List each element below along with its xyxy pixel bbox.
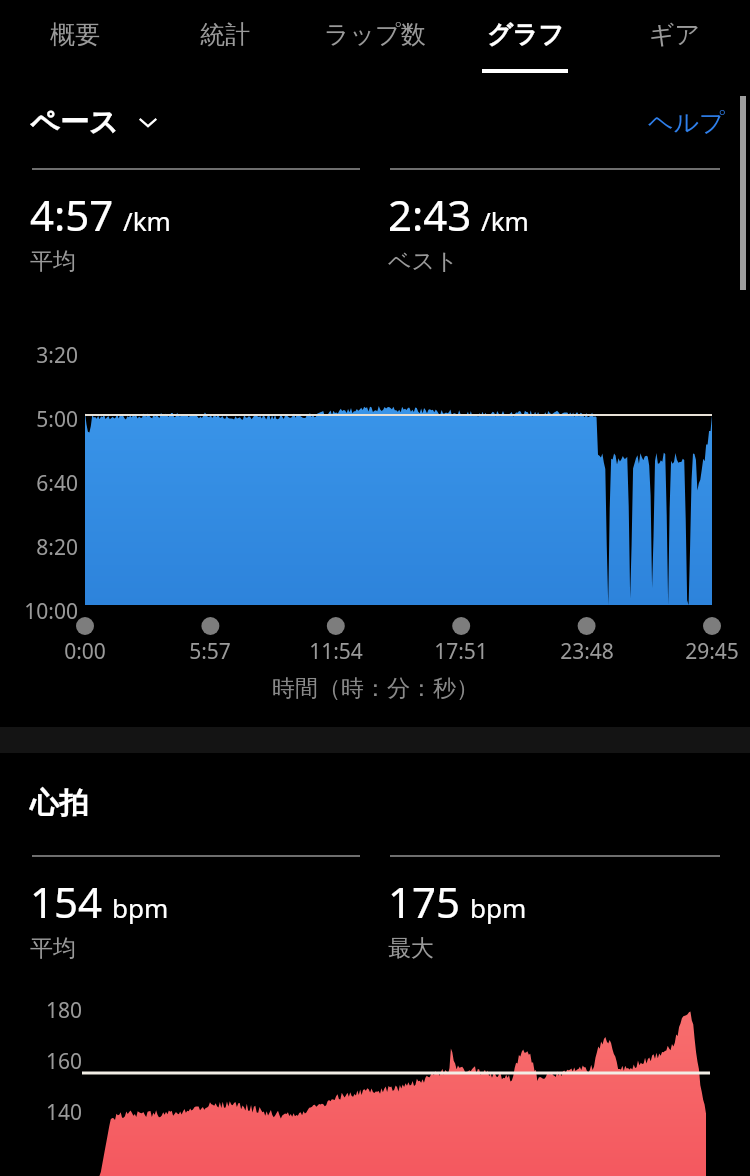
staticText: 17:51 — [434, 637, 488, 666]
staticText: 心拍 — [30, 785, 88, 822]
staticText: 最大 — [388, 934, 434, 963]
staticText: ベスト — [388, 247, 459, 276]
staticText: 4:57 — [30, 186, 114, 243]
button[interactable]: 154 — [30, 873, 370, 963]
staticText: 5:00 — [36, 405, 78, 434]
staticText: 23:48 — [560, 637, 614, 666]
staticText: 29:45 — [685, 637, 739, 666]
staticText: 10:00 — [24, 597, 78, 626]
staticText: /km — [123, 203, 171, 238]
staticText: bpm — [470, 890, 527, 925]
staticText: 5:57 — [189, 637, 231, 666]
button[interactable]: 2:43 — [388, 186, 728, 276]
staticText: 3:20 — [36, 341, 78, 370]
button[interactable]: ペース — [30, 100, 161, 144]
staticText: 2:43 — [388, 186, 472, 243]
staticText: ラップ数 — [324, 19, 426, 50]
button[interactable]: 統計 — [150, 0, 300, 92]
button[interactable]: ギア — [600, 0, 750, 92]
staticText: 140 — [45, 1098, 82, 1127]
staticText: 平均 — [30, 934, 76, 963]
button[interactable]: 概要 — [0, 0, 150, 92]
button[interactable]: 175 — [388, 873, 728, 963]
staticText: グラフ — [487, 19, 564, 50]
button[interactable]: 心拍 — [30, 780, 88, 826]
staticText: 統計 — [200, 19, 250, 50]
staticText: 概要 — [50, 19, 100, 50]
button[interactable]: グラフ — [450, 0, 600, 92]
staticText: /km — [481, 203, 529, 238]
staticText: 154 — [30, 873, 103, 930]
staticText: 時間（時：分：秒） — [272, 674, 479, 703]
staticText: 6:40 — [36, 469, 78, 498]
staticText: 180 — [45, 996, 82, 1025]
staticText: ペース — [30, 104, 119, 141]
staticText: ヘルプ — [648, 107, 725, 138]
staticText: 11:54 — [309, 637, 363, 666]
staticText: ギア — [649, 19, 701, 50]
staticText: 8:20 — [36, 533, 78, 562]
button[interactable]: ラップ数 — [300, 0, 450, 92]
staticText: 平均 — [30, 247, 76, 276]
staticText: 160 — [45, 1047, 82, 1076]
button[interactable]: 4:57 — [30, 186, 370, 276]
staticText: 0:00 — [64, 637, 106, 666]
staticText: 175 — [388, 873, 461, 930]
staticText: bpm — [112, 890, 169, 925]
button[interactable]: ヘルプ — [630, 100, 725, 144]
